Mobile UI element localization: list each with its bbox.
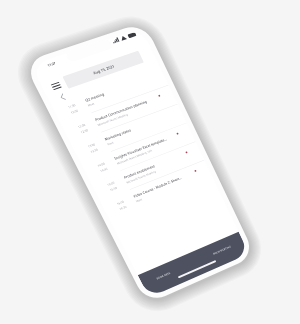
button[interactable]: Calendar agenda screen [0, 0, 300, 324]
